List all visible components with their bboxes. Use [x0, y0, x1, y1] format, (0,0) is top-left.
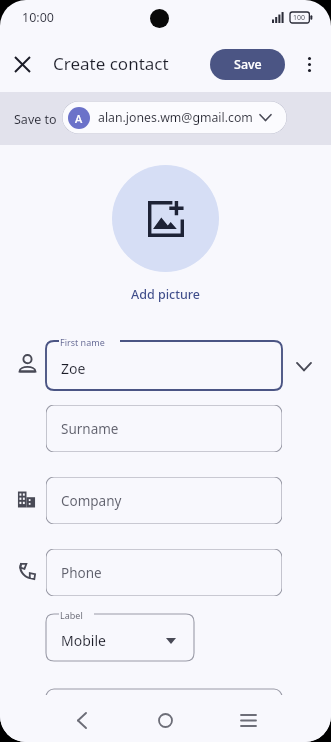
- staticText: Company: [61, 492, 122, 510]
- staticText: Save to: [14, 111, 57, 128]
- button[interactable]: Company: [46, 477, 282, 524]
- staticText: Surname: [61, 420, 119, 438]
- staticText: Mobile: [61, 631, 106, 650]
- staticText: Zoe: [61, 359, 86, 378]
- staticText: A: [75, 111, 83, 126]
- button[interactable]: Recent apps: [234, 706, 262, 734]
- button[interactable]: Save: [210, 49, 285, 80]
- button[interactable]: Home: [151, 706, 179, 734]
- button[interactable]: Phone: [46, 549, 282, 596]
- button[interactable]: Back: [68, 706, 96, 734]
- staticText: Save: [234, 56, 262, 73]
- button[interactable]: More options: [295, 50, 323, 78]
- staticText: alan.jones.wm@gmail.com: [98, 109, 253, 126]
- button[interactable]: [46, 689, 282, 719]
- button[interactable]: Add picture: [127, 286, 205, 303]
- staticText: Add picture: [131, 286, 201, 303]
- staticText: 10:00: [22, 9, 54, 26]
- button[interactable]: Surname: [46, 405, 282, 452]
- staticText: Label: [60, 609, 83, 621]
- button[interactable]: Close: [8, 50, 36, 78]
- staticText: Create contact: [53, 52, 169, 75]
- staticText: Phone: [61, 564, 102, 582]
- button[interactable]: Expand name fields: [292, 354, 316, 378]
- button[interactable]: First name: [46, 341, 282, 390]
- button[interactable]: A: [62, 101, 287, 134]
- staticText: 100: [293, 13, 306, 23]
- button[interactable]: Label: [46, 614, 194, 661]
- button[interactable]: Add picture: [112, 165, 219, 272]
- staticText: First name: [60, 336, 105, 348]
